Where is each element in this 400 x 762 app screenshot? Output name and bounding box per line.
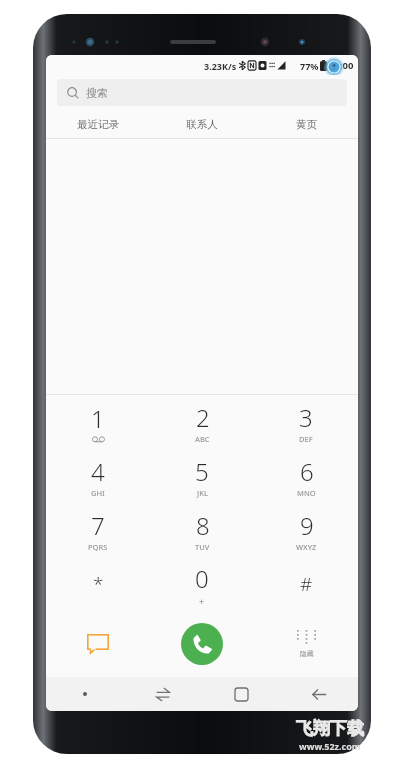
staticText: GHI	[91, 488, 105, 498]
staticText: 搜索	[86, 86, 108, 100]
staticText: 最近记录	[77, 118, 119, 131]
staticText: 2	[196, 401, 210, 434]
button[interactable]: 4	[46, 449, 150, 503]
staticText: 4	[91, 455, 105, 488]
staticText: 飞翔下载	[296, 718, 364, 739]
staticText: 1	[91, 402, 105, 435]
button[interactable]: 1	[46, 395, 150, 449]
staticText: JKL	[197, 488, 208, 498]
button[interactable]: Home	[202, 677, 280, 711]
staticText: 77%	[300, 60, 319, 72]
button[interactable]: 9	[254, 503, 358, 557]
staticText: PQRS	[88, 542, 108, 552]
staticText: 3.23K/s	[204, 60, 237, 72]
staticText: WXYZ	[296, 542, 317, 552]
button[interactable]: 2	[150, 395, 254, 449]
button[interactable]: 5	[150, 449, 254, 503]
button[interactable]: 8	[150, 503, 254, 557]
button[interactable]: *	[46, 557, 150, 611]
staticText: 3	[299, 401, 313, 434]
other: Touch indicator	[304, 57, 358, 77]
staticText: ABC	[195, 434, 210, 444]
button[interactable]: 黄页	[254, 110, 358, 138]
button[interactable]: Recents	[124, 677, 202, 711]
button[interactable]: 联系人	[150, 110, 254, 138]
button[interactable]: Back	[280, 677, 358, 711]
staticText: 6	[300, 455, 314, 488]
staticText: 14:00	[329, 59, 354, 72]
staticText: DEF	[299, 434, 313, 444]
staticText: +	[199, 595, 205, 607]
staticText: 8	[196, 509, 210, 542]
button[interactable]: 0	[150, 557, 254, 611]
staticText: TUV	[195, 542, 210, 552]
staticText: 9	[300, 509, 314, 542]
staticText: 5	[195, 455, 209, 488]
button[interactable]: 7	[46, 503, 150, 557]
button[interactable]: 搜索	[57, 79, 347, 106]
staticText: 黄页	[296, 118, 317, 131]
staticText: 联系人	[186, 118, 218, 131]
button[interactable]: 3	[254, 395, 358, 449]
staticText: MNO	[297, 488, 316, 498]
button[interactable]: 6	[254, 449, 358, 503]
button[interactable]: 最近记录	[46, 110, 150, 138]
staticText: www.52z.com	[299, 740, 361, 752]
staticText: #	[300, 571, 313, 597]
staticText: 0	[195, 562, 209, 595]
staticText: 隐藏	[300, 649, 314, 658]
staticText: 7	[91, 509, 105, 542]
button[interactable]: Message	[46, 611, 150, 677]
staticText: *	[93, 571, 104, 597]
button[interactable]: #	[254, 557, 358, 611]
button[interactable]: Menu dot	[46, 677, 124, 711]
button[interactable]: Hide keypad	[254, 611, 358, 677]
button[interactable]: Call	[181, 623, 223, 665]
